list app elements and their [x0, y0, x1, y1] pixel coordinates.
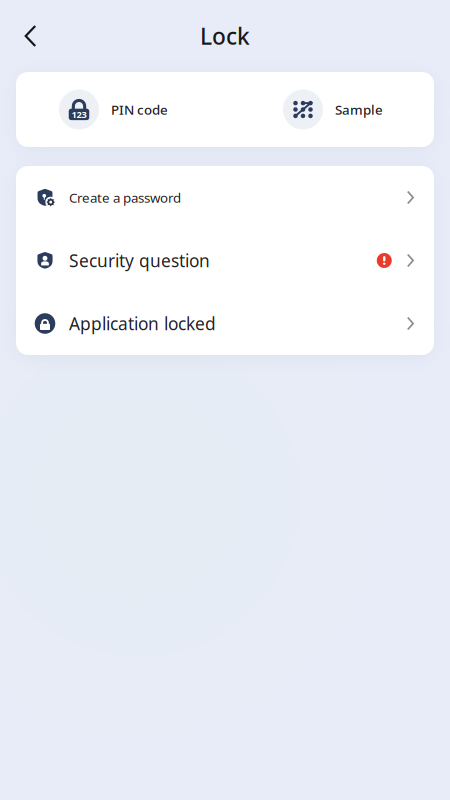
- staticText: Security question: [69, 249, 210, 272]
- staticText: Lock: [200, 21, 250, 51]
- button[interactable]: 123: [59, 89, 168, 129]
- staticText: Application locked: [69, 312, 216, 335]
- staticText: Sample: [335, 101, 383, 118]
- button[interactable]: Back: [14, 20, 46, 52]
- button[interactable]: Application locked: [16, 292, 434, 355]
- staticText: Create a password: [69, 189, 181, 206]
- staticText: 123: [71, 108, 86, 121]
- button[interactable]: Security question: [16, 229, 434, 292]
- button[interactable]: Sample: [283, 89, 383, 129]
- staticText: PIN code: [111, 101, 168, 118]
- button[interactable]: Create a password: [16, 166, 434, 229]
